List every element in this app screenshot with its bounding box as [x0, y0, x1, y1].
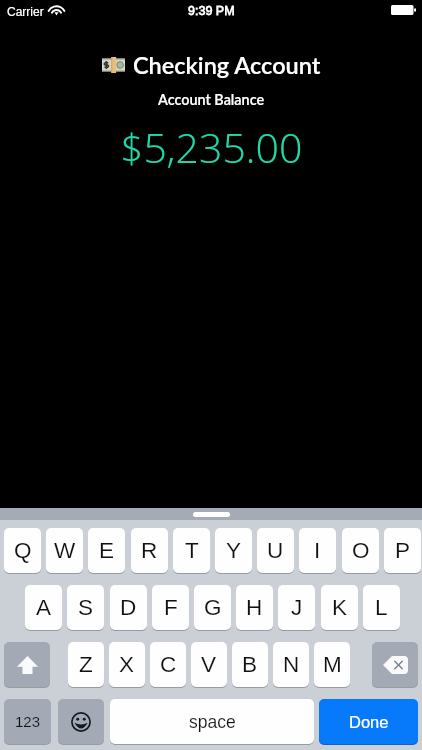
button[interactable]: E [88, 528, 125, 574]
staticText: P [395, 538, 411, 563]
staticText: V [201, 652, 217, 677]
button[interactable]: Z [68, 642, 104, 688]
staticText: S [78, 595, 94, 620]
button[interactable]: A [25, 585, 62, 631]
staticText: E [99, 538, 115, 563]
button[interactable]: S [67, 585, 104, 631]
staticText: G [204, 595, 222, 620]
staticText: I [314, 538, 321, 563]
button[interactable]: B [232, 642, 268, 688]
button[interactable]: D [110, 585, 147, 631]
button[interactable]: I [299, 528, 336, 574]
staticText: O [352, 538, 370, 563]
button[interactable]: K [321, 585, 358, 631]
button[interactable]: W [46, 528, 83, 574]
button[interactable]: R [131, 528, 168, 574]
staticText: L [375, 595, 388, 620]
staticText: H [246, 595, 263, 620]
staticText: 9:39 PM [188, 4, 235, 18]
button[interactable]: J [278, 585, 315, 631]
button[interactable]: Done [319, 699, 418, 745]
button[interactable]: V [191, 642, 227, 688]
staticText: F [164, 595, 178, 620]
button[interactable]: 123 [4, 699, 51, 745]
staticText: X [119, 652, 135, 677]
staticText: Z [79, 652, 93, 677]
staticText: Done [349, 713, 389, 731]
staticText: Carrier [7, 5, 44, 18]
button[interactable]: N [273, 642, 309, 688]
staticText: K [332, 595, 348, 620]
button[interactable]: C [150, 642, 186, 688]
button[interactable]: space [110, 699, 314, 745]
button[interactable]: U [257, 528, 294, 574]
button[interactable]: O [342, 528, 379, 574]
staticText: A [36, 595, 52, 620]
staticText: J [291, 595, 303, 620]
staticText: $5,235.00 [120, 119, 303, 175]
button[interactable]: Q [4, 528, 41, 574]
staticText: Checking Account [133, 51, 321, 79]
staticText: W [54, 538, 76, 563]
button[interactable]: Emoji keyboard [58, 699, 104, 745]
staticText: D [120, 595, 137, 620]
button[interactable]: H [236, 585, 273, 631]
staticText: Account Balance [158, 91, 265, 108]
staticText: space [189, 712, 236, 732]
button[interactable]: Backspace [372, 642, 418, 688]
button[interactable]: Y [215, 528, 252, 574]
staticText: 123 [15, 713, 41, 730]
button[interactable]: P [384, 528, 421, 574]
button[interactable]: X [109, 642, 145, 688]
staticText: U [267, 538, 284, 563]
staticText: N [283, 652, 300, 677]
button[interactable]: G [194, 585, 231, 631]
staticText: T [185, 538, 199, 563]
button[interactable]: L [363, 585, 400, 631]
button[interactable]: F [152, 585, 189, 631]
staticText: C [160, 652, 177, 677]
button[interactable]: T [173, 528, 210, 574]
button[interactable]: M [314, 642, 350, 688]
staticText: R [141, 538, 158, 563]
staticText: Y [226, 538, 242, 563]
staticText: B [242, 652, 258, 677]
staticText: Q [14, 538, 32, 563]
button[interactable]: Shift [4, 642, 50, 688]
staticText: M [323, 652, 342, 677]
